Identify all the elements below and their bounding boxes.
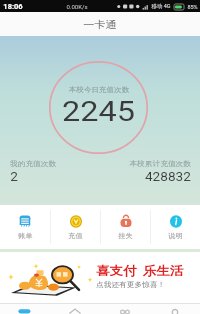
button[interactable]: 我的 (150, 304, 200, 314)
staticText: 一卡通 (83, 18, 117, 31)
button[interactable]: 账单 (0, 205, 50, 249)
staticText: 本校累计充值次数 (129, 159, 191, 168)
staticText: 挂失 (118, 232, 133, 240)
button[interactable]: 喜支付 乐生活 (0, 252, 200, 303)
staticText: 喜支付 乐生活 (96, 263, 183, 278)
staticText: 0.00K/s (66, 3, 88, 10)
staticText: 2245 (62, 96, 135, 128)
button[interactable]: 充值 (51, 205, 100, 249)
staticText: 充值 (68, 232, 83, 240)
staticText: 18:06 (3, 2, 23, 11)
button[interactable]: 说明 (151, 205, 200, 249)
button[interactable]: 发现 (100, 304, 150, 314)
staticText: 我的充值次数 (10, 159, 56, 168)
button[interactable]: 挂失 (101, 205, 150, 249)
staticText: 移动 4G (151, 3, 171, 10)
button[interactable]: 一卡通 (0, 304, 50, 314)
staticText: 账单 (18, 232, 33, 240)
staticText: 点我还有更多惊喜！ (96, 280, 165, 289)
staticText: 2 (10, 169, 18, 184)
button[interactable]: 首页 (50, 304, 100, 314)
staticText: 428832 (145, 169, 191, 184)
staticText: 说明 (168, 232, 183, 240)
staticText: 85% (187, 4, 198, 10)
staticText: 本校今日充值次数 (69, 85, 129, 94)
